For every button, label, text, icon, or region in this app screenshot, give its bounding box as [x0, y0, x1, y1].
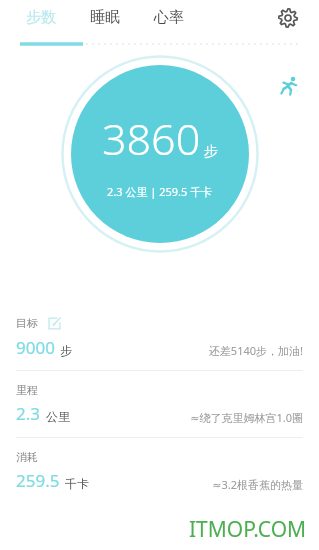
button[interactable]: 里程 [0, 371, 319, 437]
button[interactable]: 3860 [61, 55, 259, 253]
button[interactable]: Settings [271, 1, 305, 35]
staticText: ITMOP.COM [189, 515, 307, 544]
staticText: 2.3 [16, 402, 41, 425]
staticText: 消耗 [16, 450, 38, 464]
staticText: 心率 [154, 8, 184, 27]
staticText: 还差5140步，加油! [208, 343, 303, 358]
staticText: 睡眠 [90, 8, 120, 27]
staticText: 千卡 [65, 476, 89, 491]
button[interactable]: Running activity [275, 72, 303, 100]
button[interactable]: 消耗 [0, 438, 319, 504]
staticText: 目标 [16, 316, 38, 330]
staticText: 259.5 [16, 469, 60, 492]
staticText: ≈绕了克里姆林宫1.0圈 [190, 410, 303, 425]
staticText: 9000 [16, 336, 55, 359]
staticText: 公里 [46, 409, 70, 424]
staticText: 步 [204, 143, 218, 161]
staticText: 步数 [26, 8, 56, 27]
button[interactable]: Edit goal [46, 315, 62, 331]
staticText: 3860 [102, 109, 201, 168]
staticText: 里程 [16, 383, 38, 397]
staticText: ≈3.2根香蕉的热量 [212, 477, 303, 492]
staticText: 2.3 公里 | 259.5 千卡 [107, 184, 213, 199]
button[interactable]: 睡眠 [84, 0, 126, 35]
button[interactable]: 目标 [0, 304, 319, 370]
button[interactable]: 心率 [148, 0, 190, 35]
button[interactable]: 步数 [20, 0, 62, 35]
staticText: 步 [60, 343, 72, 358]
